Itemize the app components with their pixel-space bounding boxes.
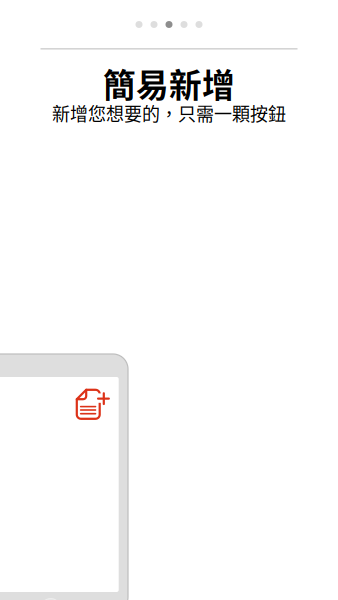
- staticText: 新增您想要的，只需一顆按鈕: [52, 100, 286, 126]
- staticText: 簡易新增: [103, 60, 235, 107]
